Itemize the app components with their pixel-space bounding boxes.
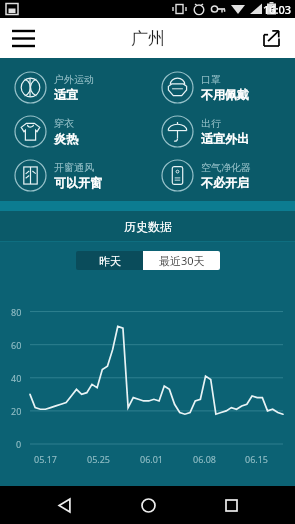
staticText: 昨天 [99, 254, 121, 268]
staticText: 40 [11, 372, 22, 384]
staticText: 户外运动 [54, 73, 94, 86]
button[interactable]: Home [128, 486, 168, 524]
staticText: 可以开窗 [54, 175, 102, 190]
staticText: 炎热 [54, 131, 78, 146]
staticText: 广州 [131, 28, 165, 49]
staticText: 出行 [201, 117, 221, 130]
staticText: 16:03 [263, 2, 292, 17]
staticText: 适宜外出 [201, 131, 249, 146]
button[interactable]: 户外运动 [0, 71, 147, 104]
staticText: 适宜 [54, 87, 78, 102]
staticText: 0 [16, 438, 22, 450]
staticText: 不必开启 [201, 175, 249, 190]
staticText: 历史数据 [124, 219, 172, 234]
button[interactable]: Share [255, 22, 287, 54]
staticText: 60 [11, 339, 22, 351]
staticText: 最近30天 [159, 253, 205, 268]
staticText: 20 [11, 405, 22, 417]
staticText: 口罩 [201, 73, 221, 86]
button[interactable]: 开窗通风 [0, 159, 147, 192]
staticText: 开窗通风 [54, 161, 94, 174]
staticText: 05.25 [87, 453, 111, 465]
staticText: 空气净化器 [201, 161, 251, 174]
button[interactable]: Menu [5, 20, 41, 56]
staticText: 不用佩戴 [201, 87, 249, 102]
staticText: 06.08 [193, 453, 217, 465]
button[interactable]: 昨天 [76, 251, 143, 270]
button[interactable]: Back [44, 486, 84, 524]
button[interactable]: 口罩 [147, 71, 295, 104]
button[interactable]: 空气净化器 [147, 159, 295, 192]
staticText: 06.01 [140, 453, 164, 465]
staticText: 05.17 [34, 453, 58, 465]
button[interactable]: 出行 [147, 115, 295, 148]
staticText: 穿衣 [54, 117, 74, 130]
staticText: 80 [11, 306, 22, 318]
button[interactable]: Recents [211, 486, 251, 524]
button[interactable]: 最近30天 [143, 251, 220, 270]
staticText: 06.15 [245, 453, 269, 465]
button[interactable]: 穿衣 [0, 115, 147, 148]
